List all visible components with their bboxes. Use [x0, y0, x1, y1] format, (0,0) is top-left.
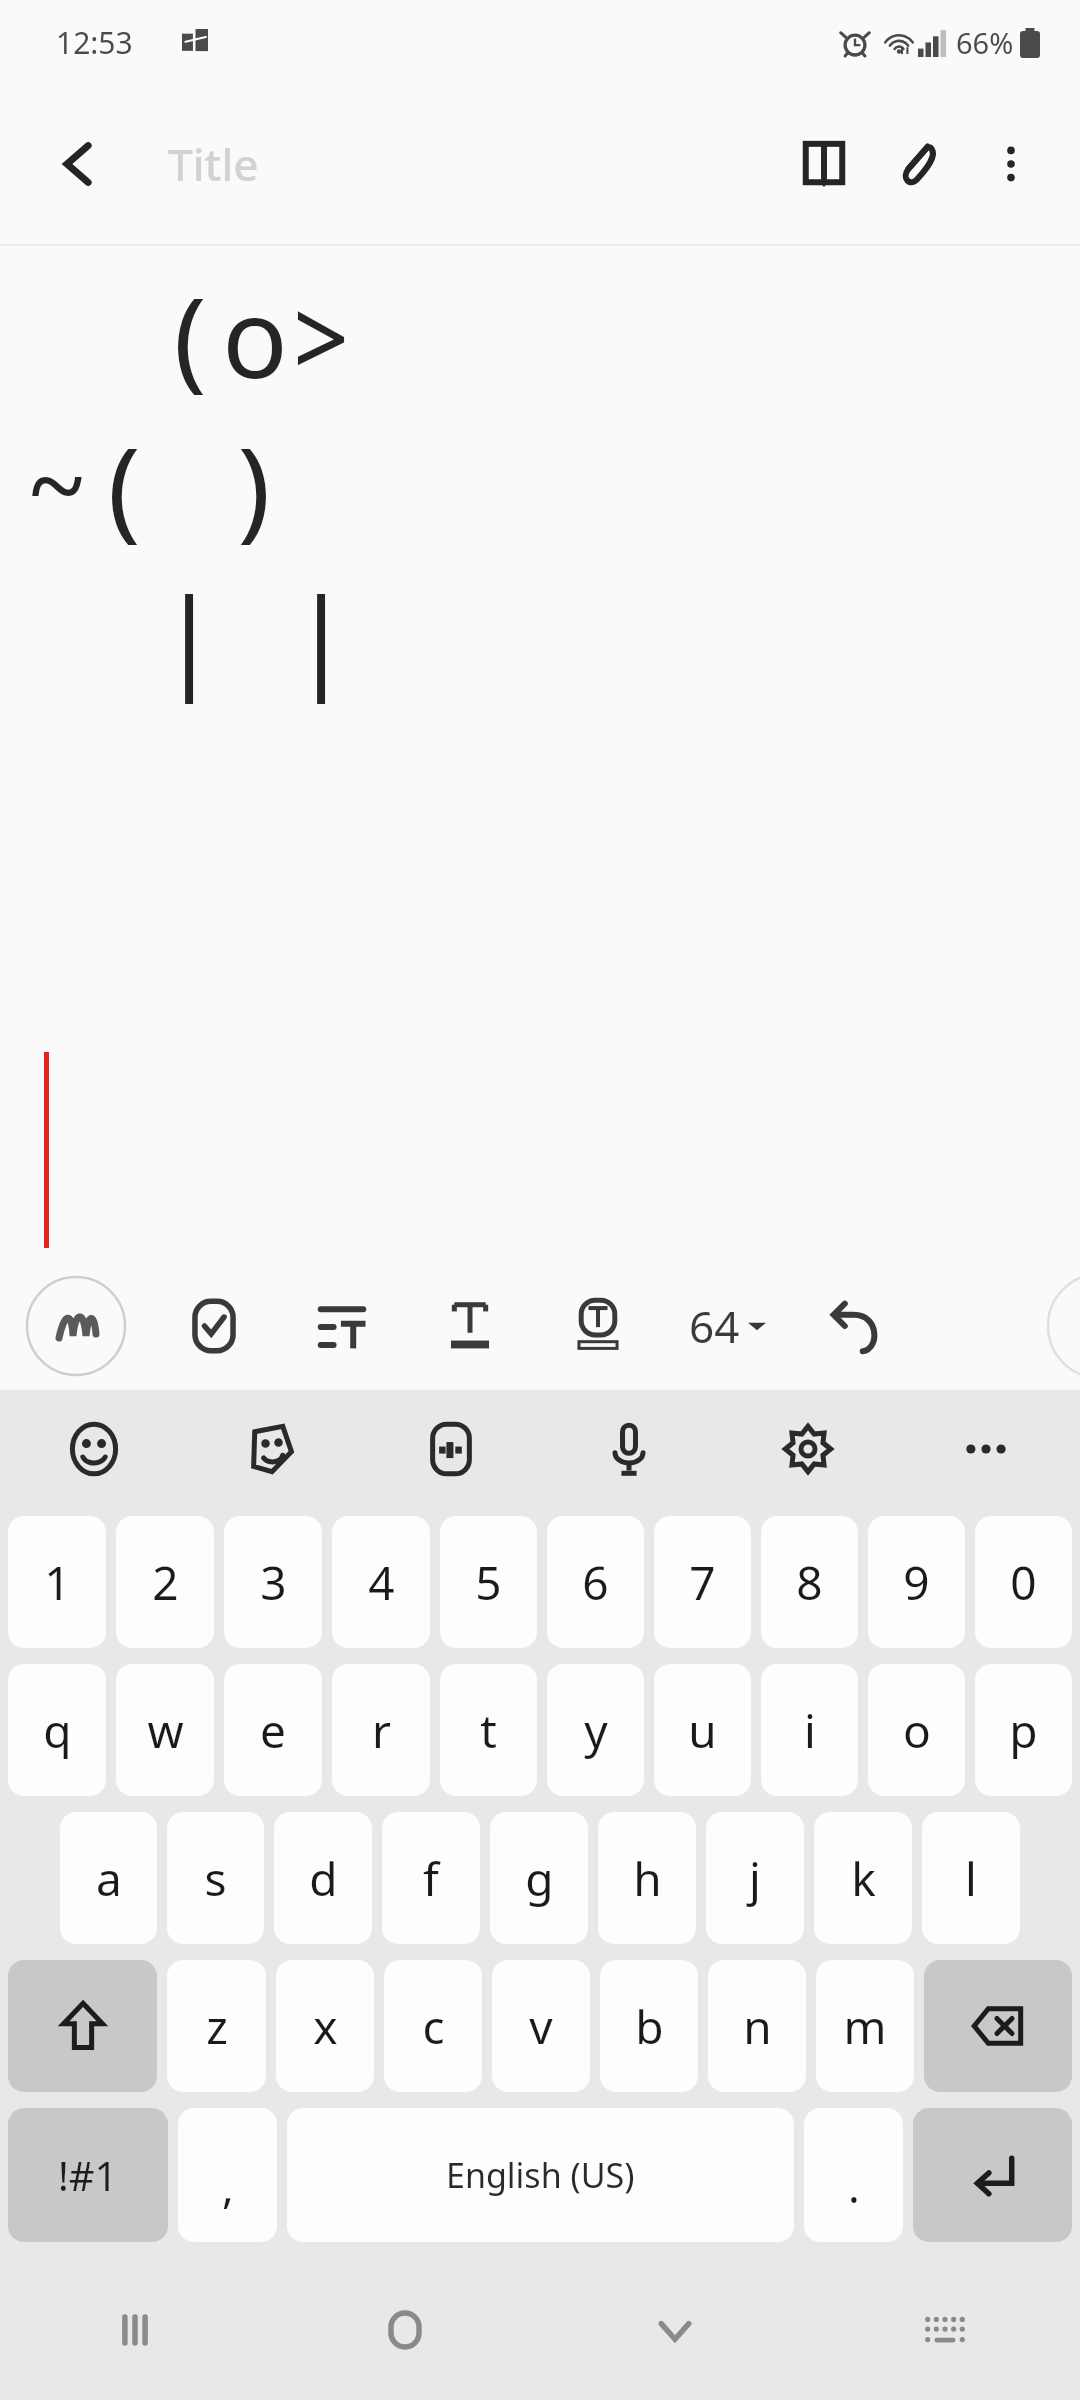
button[interactable]: y	[547, 1664, 644, 1796]
button[interactable]: 3	[224, 1516, 322, 1648]
staticText: p	[1009, 1699, 1038, 1762]
staticText: c	[422, 1995, 445, 2058]
button[interactable]: Text box	[534, 1262, 662, 1390]
button[interactable]: More options	[968, 121, 1054, 207]
staticText: u	[688, 1699, 717, 1762]
button[interactable]: Handwriting	[26, 1276, 126, 1376]
staticText: 66%	[956, 23, 1014, 62]
staticText: g	[525, 1847, 554, 1910]
staticText: 2	[152, 1551, 179, 1614]
button[interactable]: More	[938, 1401, 1034, 1497]
button[interactable]: 1	[8, 1516, 106, 1648]
staticText: k	[851, 1847, 876, 1910]
button[interactable]: Backspace	[924, 1960, 1072, 2092]
button[interactable]: 8	[761, 1516, 858, 1648]
button[interactable]: !#1	[8, 2108, 168, 2242]
button[interactable]: z	[167, 1960, 266, 2092]
staticText: 6	[582, 1551, 609, 1614]
button[interactable]: n	[708, 1960, 806, 2092]
staticText: 5	[475, 1551, 502, 1614]
button[interactable]: Undo	[792, 1262, 920, 1390]
button[interactable]: p	[975, 1664, 1072, 1796]
button[interactable]: t	[440, 1664, 537, 1796]
staticText: l	[965, 1847, 977, 1910]
button[interactable]: Home	[270, 2260, 540, 2400]
button[interactable]: o	[868, 1664, 965, 1796]
button[interactable]: f	[382, 1812, 480, 1944]
button[interactable]: l	[922, 1812, 1020, 1944]
button[interactable]: Switch keyboard	[810, 2260, 1080, 2400]
button[interactable]: 4	[332, 1516, 430, 1648]
button[interactable]: Text style	[406, 1262, 534, 1390]
staticText: s	[204, 1847, 227, 1910]
button[interactable]: Attach	[872, 116, 968, 212]
button[interactable]: 6	[547, 1516, 644, 1648]
button[interactable]: q	[8, 1664, 106, 1796]
button[interactable]: h	[598, 1812, 696, 1944]
staticText: 64	[689, 1296, 740, 1356]
staticText: f	[423, 1847, 439, 1910]
staticText: m	[843, 1995, 887, 2058]
staticText: Title	[168, 134, 259, 194]
button[interactable]: Enter	[913, 2108, 1072, 2242]
button[interactable]: v	[492, 1960, 590, 2092]
button[interactable]: Emoji	[46, 1401, 142, 1497]
button[interactable]: b	[600, 1960, 698, 2092]
button[interactable]: j	[706, 1812, 804, 1944]
staticText: e	[260, 1699, 286, 1762]
button[interactable]: English (US)	[287, 2108, 794, 2242]
staticText: h	[633, 1847, 662, 1910]
button[interactable]: m	[816, 1960, 914, 2092]
button[interactable]: w	[116, 1664, 214, 1796]
staticText: t	[480, 1699, 497, 1762]
button[interactable]: s	[167, 1812, 264, 1944]
button[interactable]: 2	[116, 1516, 214, 1648]
staticText: q	[43, 1699, 72, 1762]
button[interactable]: Keyboard settings	[760, 1401, 856, 1497]
button[interactable]: Recents	[0, 2260, 270, 2400]
button[interactable]: Checklist	[150, 1262, 278, 1390]
button[interactable]: 0	[975, 1516, 1072, 1648]
button[interactable]: 9	[868, 1516, 965, 1648]
button[interactable]: u	[654, 1664, 751, 1796]
button[interactable]: g	[490, 1812, 588, 1944]
button[interactable]: Stickers	[224, 1401, 320, 1497]
staticText: i	[804, 1699, 816, 1762]
button[interactable]: 7	[654, 1516, 751, 1648]
button[interactable]: Paragraph style	[278, 1262, 406, 1390]
staticText: 4	[368, 1551, 395, 1614]
staticText: j	[749, 1847, 761, 1910]
button[interactable]: e	[224, 1664, 322, 1796]
staticText: a	[96, 1847, 122, 1910]
staticText: 7	[689, 1551, 716, 1614]
button[interactable]: i	[761, 1664, 858, 1796]
button[interactable]: Reading mode	[776, 116, 872, 212]
staticText: n	[743, 1995, 772, 2058]
button[interactable]: a	[60, 1812, 157, 1944]
button[interactable]: Hide keyboard	[540, 2260, 810, 2400]
button[interactable]: 64	[662, 1262, 792, 1390]
button[interactable]: k	[814, 1812, 912, 1944]
button[interactable]: c	[384, 1960, 482, 2092]
staticText: y	[584, 1699, 608, 1762]
button[interactable]: ,	[178, 2108, 277, 2242]
button[interactable]: d	[274, 1812, 372, 1944]
staticText: (o> ~( ) | |	[24, 260, 354, 710]
staticText: w	[147, 1699, 184, 1762]
button[interactable]: r	[332, 1664, 430, 1796]
staticText: 8	[796, 1551, 823, 1614]
staticText: 9	[903, 1551, 930, 1614]
button[interactable]: Shift	[8, 1960, 157, 2092]
staticText: r	[372, 1699, 391, 1762]
staticText: .	[848, 2156, 860, 2216]
staticText: z	[206, 1995, 228, 2058]
staticText: 1	[44, 1551, 71, 1614]
button[interactable]: Voice input	[581, 1401, 677, 1497]
staticText: o	[903, 1699, 931, 1762]
button[interactable]: 5	[440, 1516, 537, 1648]
button[interactable]: .	[804, 2108, 903, 2242]
button[interactable]: x	[276, 1960, 374, 2092]
button[interactable]: Back	[40, 126, 116, 202]
button[interactable]: GIF	[403, 1401, 499, 1497]
staticText: English (US)	[446, 2152, 635, 2198]
